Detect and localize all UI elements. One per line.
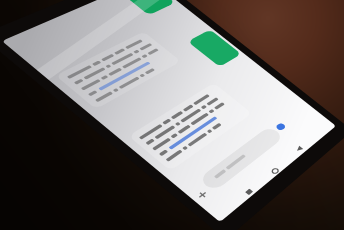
button[interactable]: Phone showing an SMS conversation: [0, 0, 344, 230]
